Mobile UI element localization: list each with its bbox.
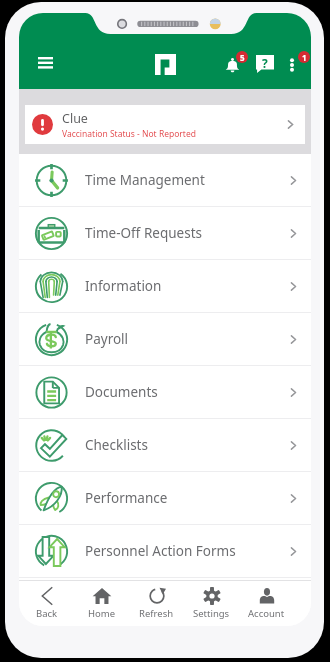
staticText: Back	[36, 607, 58, 620]
button[interactable]: Time Management	[19, 154, 311, 206]
button[interactable]: Settings	[184, 581, 239, 626]
staticText: Performance	[85, 489, 168, 507]
button[interactable]: Checklists	[19, 419, 311, 471]
button[interactable]: Performance	[19, 472, 311, 524]
button[interactable]: Payroll	[19, 313, 311, 365]
staticText: 5	[240, 52, 245, 63]
button[interactable]: Documents	[19, 366, 311, 418]
button[interactable]: Personnel Action Forms	[19, 525, 311, 577]
button[interactable]: Information	[19, 260, 311, 312]
staticText: Information	[85, 277, 162, 295]
button[interactable]: Home	[74, 581, 129, 626]
staticText: Time Management	[85, 171, 205, 189]
staticText: Time-Off Requests	[85, 224, 202, 242]
button[interactable]: Time-Off Requests	[19, 207, 311, 259]
button[interactable]: Account	[239, 581, 294, 626]
staticText: Refresh	[139, 607, 174, 620]
staticText: Home	[88, 607, 116, 620]
button[interactable]: Clue	[25, 105, 305, 144]
button[interactable]: Notifications	[218, 49, 248, 79]
staticText: 1	[302, 52, 307, 63]
staticText: Vaccination Status - Not Reported	[62, 128, 196, 140]
button[interactable]: Menu	[31, 50, 59, 78]
staticText: Documents	[85, 383, 158, 401]
staticText: Payroll	[85, 330, 129, 348]
button[interactable]: Refresh	[129, 581, 184, 626]
staticText: Checklists	[85, 436, 148, 454]
staticText: Clue	[62, 110, 88, 127]
button[interactable]: More options	[281, 50, 309, 78]
staticText: Account	[248, 607, 285, 620]
staticText: Personnel Action Forms	[85, 542, 236, 560]
staticText: Settings	[193, 607, 230, 620]
staticText: ?	[262, 55, 268, 71]
button[interactable]: Back	[19, 581, 74, 626]
button[interactable]: Help	[250, 49, 280, 79]
